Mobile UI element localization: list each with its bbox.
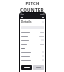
staticText: Details [21, 20, 32, 24]
staticText: PITCH [25, 1, 40, 7]
button[interactable]: More options [42, 16, 44, 18]
button[interactable] [20, 34, 45, 38]
button[interactable] [20, 42, 45, 46]
button[interactable] [20, 38, 45, 42]
button[interactable] [20, 54, 45, 58]
button[interactable] [33, 65, 44, 70]
button[interactable]: Menu [21, 16, 23, 18]
button[interactable] [21, 65, 32, 70]
button[interactable] [20, 50, 45, 54]
button[interactable] [20, 30, 45, 34]
staticText: COUNTER [20, 7, 44, 13]
button[interactable] [20, 58, 45, 62]
